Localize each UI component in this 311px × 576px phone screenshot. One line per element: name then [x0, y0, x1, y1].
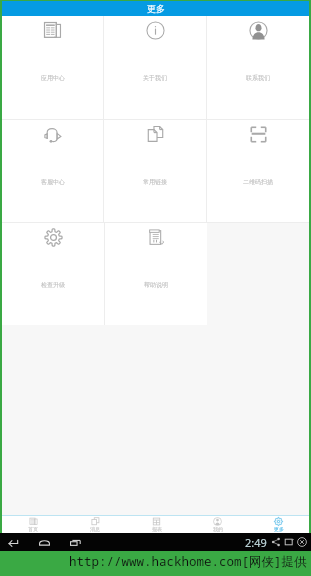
staticText: 消息 [90, 526, 100, 532]
button[interactable]: 客服中心 [2, 120, 103, 222]
staticText: 客服中心 [41, 178, 65, 186]
staticText: 检查升级 [41, 281, 65, 289]
staticText: 报表 [152, 526, 162, 532]
button[interactable]: 常用链接 [104, 120, 206, 222]
staticText: 联系我们 [246, 74, 270, 82]
button[interactable]: 检查升级 [2, 223, 104, 325]
button[interactable]: 联系我们 [207, 16, 309, 119]
button[interactable]: 帮助说明 [105, 223, 207, 325]
staticText: 更多 [147, 3, 165, 14]
staticText: http://www.hackhome.com[网侠]提供 [69, 553, 307, 570]
staticText: 首页 [28, 526, 38, 532]
button[interactable]: Back [5, 534, 21, 550]
button[interactable]: 应用中心 [2, 16, 103, 119]
button[interactable]: 我的 [187, 516, 248, 533]
staticText: 二维码扫描 [243, 178, 273, 186]
button[interactable]: 关于我们 [104, 16, 206, 119]
button[interactable]: Recents [67, 534, 83, 550]
staticText: 应用中心 [41, 74, 65, 82]
staticText: 更多 [274, 526, 284, 532]
button[interactable]: 报表 [126, 516, 187, 533]
staticText: 常用链接 [143, 178, 167, 186]
button[interactable]: 首页 [2, 516, 64, 533]
staticText: 关于我们 [143, 74, 167, 82]
staticText: 帮助说明 [144, 281, 168, 289]
button[interactable]: 消息 [64, 516, 126, 533]
staticText: 2:49 [245, 535, 267, 550]
button[interactable]: 更多 [248, 516, 309, 533]
staticText: 我的 [213, 526, 223, 532]
button[interactable]: Home [36, 534, 52, 550]
button[interactable]: 二维码扫描 [207, 120, 309, 222]
